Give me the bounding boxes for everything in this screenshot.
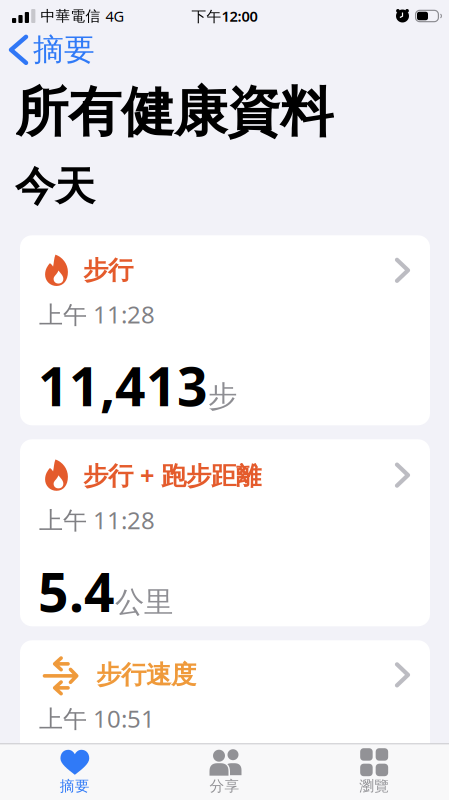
- button[interactable]: 步行: [20, 235, 430, 425]
- button[interactable]: 瀏覽: [299, 748, 449, 795]
- staticText: 下午12:00: [191, 6, 257, 26]
- staticText: 所有健康資料: [15, 80, 333, 145]
- staticText: 公里: [115, 584, 173, 620]
- button[interactable]: 步行速度: [20, 640, 430, 798]
- staticText: 上午 11:28: [39, 298, 155, 330]
- staticText: 步行 + 跑步距離: [83, 458, 261, 492]
- staticText: 摘要: [60, 777, 90, 795]
- staticText: 步: [208, 378, 237, 414]
- staticText: 上午 10:51: [39, 702, 155, 734]
- staticText: 摘要: [33, 31, 95, 69]
- staticText: 步行: [83, 255, 133, 286]
- staticText: 4G: [105, 6, 124, 26]
- staticText: 中華電信: [40, 7, 100, 25]
- staticText: 5.4: [38, 556, 115, 627]
- staticText: 上午 11:28: [39, 504, 155, 536]
- button[interactable]: 摘要: [0, 748, 150, 795]
- staticText: 步行速度: [96, 659, 196, 690]
- button[interactable]: 步行 + 跑步距離: [20, 439, 430, 626]
- button[interactable]: 摘要: [0, 31, 95, 69]
- staticText: 分享: [209, 777, 239, 795]
- staticText: 今天: [15, 162, 95, 211]
- button[interactable]: 分享: [150, 748, 299, 795]
- staticText: 瀏覽: [359, 777, 389, 795]
- staticText: 11,413: [38, 350, 208, 421]
